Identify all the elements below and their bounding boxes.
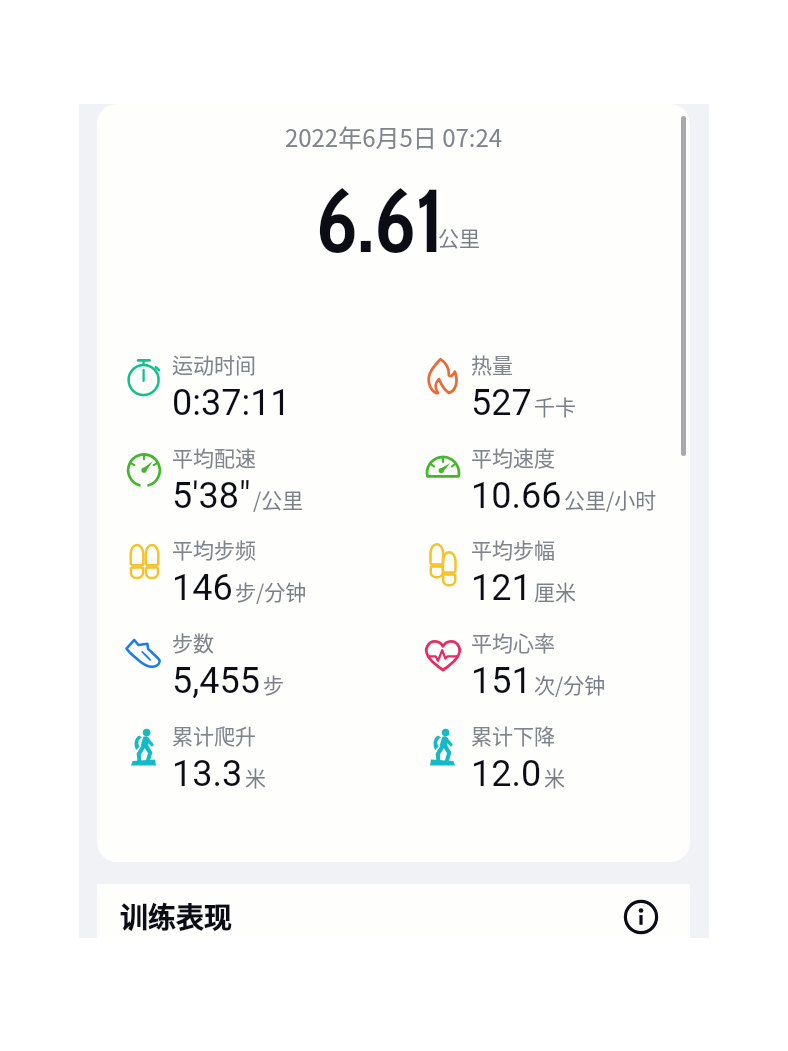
other: Average speed bbox=[423, 448, 463, 488]
other: Total descent bbox=[423, 726, 463, 766]
staticText: 146 bbox=[172, 567, 233, 609]
button[interactable]: Steps bbox=[127, 627, 417, 711]
staticText: 平均步频 bbox=[172, 534, 256, 564]
staticText: 5'38" bbox=[172, 475, 251, 517]
button[interactable]: Average heart rate bbox=[426, 627, 716, 711]
staticText: 累计下降 bbox=[471, 720, 555, 750]
staticText: 步/分钟 bbox=[235, 576, 307, 606]
staticText: /公里 bbox=[253, 484, 304, 514]
staticText: 米 bbox=[245, 762, 266, 792]
staticText: 平均配速 bbox=[172, 442, 256, 472]
staticText: 0:37:11 bbox=[172, 382, 291, 424]
staticText: 527 bbox=[471, 382, 532, 424]
button[interactable]: Average speed bbox=[426, 442, 716, 526]
button[interactable]: Information bbox=[619, 895, 663, 939]
other: Total ascent bbox=[124, 726, 164, 766]
other: Average stride bbox=[423, 540, 463, 580]
staticText: 厘米 bbox=[534, 576, 576, 606]
staticText: 步数 bbox=[172, 627, 214, 657]
button[interactable]: Average pace bbox=[127, 442, 417, 526]
staticText: 平均速度 bbox=[471, 442, 555, 472]
staticText: 平均心率 bbox=[471, 627, 555, 657]
staticText: 5,455 bbox=[172, 660, 261, 702]
staticText: 公里/小时 bbox=[564, 484, 657, 514]
staticText: 运动时间 bbox=[172, 349, 256, 379]
other: Duration bbox=[124, 355, 164, 395]
button[interactable]: Calories bbox=[426, 349, 716, 433]
other: Steps bbox=[124, 633, 164, 673]
staticText: 次/分钟 bbox=[534, 669, 606, 699]
button[interactable]: Average stride bbox=[426, 534, 716, 618]
button[interactable]: Total descent bbox=[426, 720, 716, 804]
staticText: 6.61 bbox=[316, 167, 444, 274]
staticText: 千卡 bbox=[534, 391, 576, 421]
button[interactable]: 训练表现 bbox=[120, 896, 233, 937]
staticText: 平均步幅 bbox=[471, 534, 555, 564]
other: Average cadence bbox=[124, 540, 164, 580]
staticText: 13.3 bbox=[172, 753, 243, 795]
other: Average pace bbox=[124, 448, 164, 488]
staticText: 热量 bbox=[471, 349, 513, 379]
button[interactable]: Total ascent bbox=[127, 720, 417, 804]
staticText: 2022年6月5日 07:24 bbox=[97, 119, 690, 154]
staticText: 公里 bbox=[438, 222, 480, 252]
staticText: 累计爬升 bbox=[172, 720, 256, 750]
staticText: 米 bbox=[544, 762, 565, 792]
button[interactable]: Duration bbox=[127, 349, 417, 433]
staticText: 121 bbox=[471, 567, 532, 609]
button[interactable]: Average cadence bbox=[127, 534, 417, 618]
staticText: 12.0 bbox=[471, 753, 542, 795]
staticText: 10.66 bbox=[471, 475, 562, 517]
staticText: 步 bbox=[263, 669, 284, 699]
staticText: 151 bbox=[471, 660, 532, 702]
other: Calories bbox=[423, 355, 463, 395]
other: Average heart rate bbox=[423, 633, 463, 673]
